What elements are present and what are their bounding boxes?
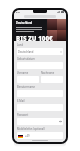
staticText: Vorname: [17, 71, 29, 75]
staticText: BIS ZU 100€: [16, 34, 53, 41]
button[interactable]: Deutschland: [17, 48, 63, 55]
staticText: E-Mail: [17, 99, 25, 103]
staticText: Deutschland: [18, 50, 34, 54]
staticText: Passwort: [17, 113, 29, 117]
staticText: Mobiltelefon (optional): [17, 127, 45, 131]
other: Germany: [18, 135, 23, 138]
button[interactable]: Show password: [17, 118, 63, 125]
button[interactable]: Show password: [59, 120, 62, 123]
staticText: Deutschland: [16, 21, 33, 25]
staticText: Benutzername: [17, 85, 35, 89]
staticText: Geburtsdatum: [17, 57, 35, 61]
staticText: Nachname: [41, 71, 55, 75]
staticText: Land: [17, 43, 24, 47]
button[interactable]: Germany: [17, 132, 63, 139]
staticText: 9:41: [16, 11, 21, 14]
staticText: +49: [25, 134, 30, 138]
